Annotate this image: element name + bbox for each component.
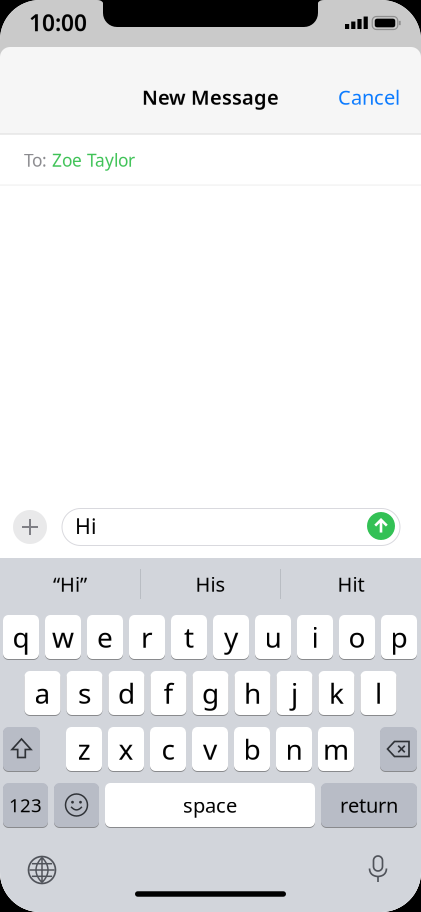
staticText: Zoe Taylor [52, 148, 135, 171]
button[interactable]: n [276, 727, 312, 771]
staticText: return [340, 792, 398, 818]
button[interactable] [364, 856, 392, 884]
button[interactable] [54, 783, 99, 827]
staticText: n [285, 730, 302, 768]
button[interactable]: a [24, 671, 60, 715]
staticText: b [243, 730, 260, 768]
staticText: g [202, 674, 219, 712]
staticText: His [195, 571, 225, 597]
button[interactable]: h [234, 671, 270, 715]
button[interactable]: 123 [3, 783, 48, 827]
button[interactable]: b [234, 727, 270, 771]
button[interactable] [380, 727, 417, 771]
staticText: a [34, 674, 50, 712]
staticText: s [78, 674, 91, 712]
button[interactable]: m [318, 727, 354, 771]
staticText: v [203, 730, 217, 768]
button[interactable]: q [3, 615, 39, 659]
button[interactable]: r [129, 615, 165, 659]
button[interactable]: To: [0, 135, 421, 185]
button[interactable]: f [150, 671, 186, 715]
staticText: e [97, 618, 113, 656]
staticText: t [184, 618, 194, 656]
button[interactable]: e [87, 615, 123, 659]
staticText: Cancel [338, 84, 400, 110]
button[interactable]: v [192, 727, 228, 771]
staticText: o [348, 618, 365, 656]
staticText: New Message [142, 84, 279, 110]
button[interactable]: w [45, 615, 81, 659]
button[interactable]: Hit [286, 564, 416, 604]
button[interactable]: l [360, 671, 396, 715]
staticText: k [329, 674, 344, 712]
staticText: Hi [75, 512, 97, 540]
staticText: p [390, 618, 407, 656]
button[interactable]: y [213, 615, 249, 659]
button[interactable]: t [171, 615, 207, 659]
staticText: l [375, 674, 382, 712]
staticText: m [323, 730, 349, 768]
staticText: z [77, 730, 90, 768]
button[interactable] [28, 856, 55, 883]
staticText: space [183, 792, 237, 818]
button[interactable]: return [321, 783, 417, 827]
staticText: u [264, 618, 281, 656]
button[interactable]: d [108, 671, 144, 715]
button[interactable]: o [339, 615, 375, 659]
button[interactable]: His [145, 564, 275, 604]
staticText: To: [24, 148, 47, 171]
button[interactable]: g [192, 671, 228, 715]
staticText: 10:00 [29, 7, 87, 37]
button[interactable]: i [297, 615, 333, 659]
button[interactable]: j [276, 671, 312, 715]
staticText: Hit [337, 571, 364, 597]
button[interactable]: z [66, 727, 102, 771]
staticText: r [141, 618, 153, 656]
button[interactable]: p [381, 615, 417, 659]
staticText: h [244, 674, 261, 712]
button[interactable] [3, 727, 40, 771]
button[interactable]: k [318, 671, 354, 715]
button[interactable]: c [150, 727, 186, 771]
staticText: f [163, 674, 173, 712]
button[interactable] [13, 510, 47, 544]
button[interactable]: “Hi” [5, 564, 135, 604]
staticText: j [291, 674, 298, 712]
staticText: w [52, 618, 74, 656]
staticText: i [311, 618, 318, 656]
staticText: 123 [9, 793, 42, 817]
staticText: d [118, 674, 135, 712]
staticText: q [12, 618, 29, 656]
button[interactable]: Cancel [338, 84, 400, 110]
button[interactable]: u [255, 615, 291, 659]
button[interactable] [367, 512, 395, 540]
staticText: x [118, 730, 133, 768]
button[interactable]: space [105, 783, 315, 827]
staticText: y [224, 618, 238, 656]
button[interactable]: s [66, 671, 102, 715]
staticText: c [161, 730, 174, 768]
button[interactable]: x [108, 727, 144, 771]
staticText: “Hi” [53, 571, 87, 597]
